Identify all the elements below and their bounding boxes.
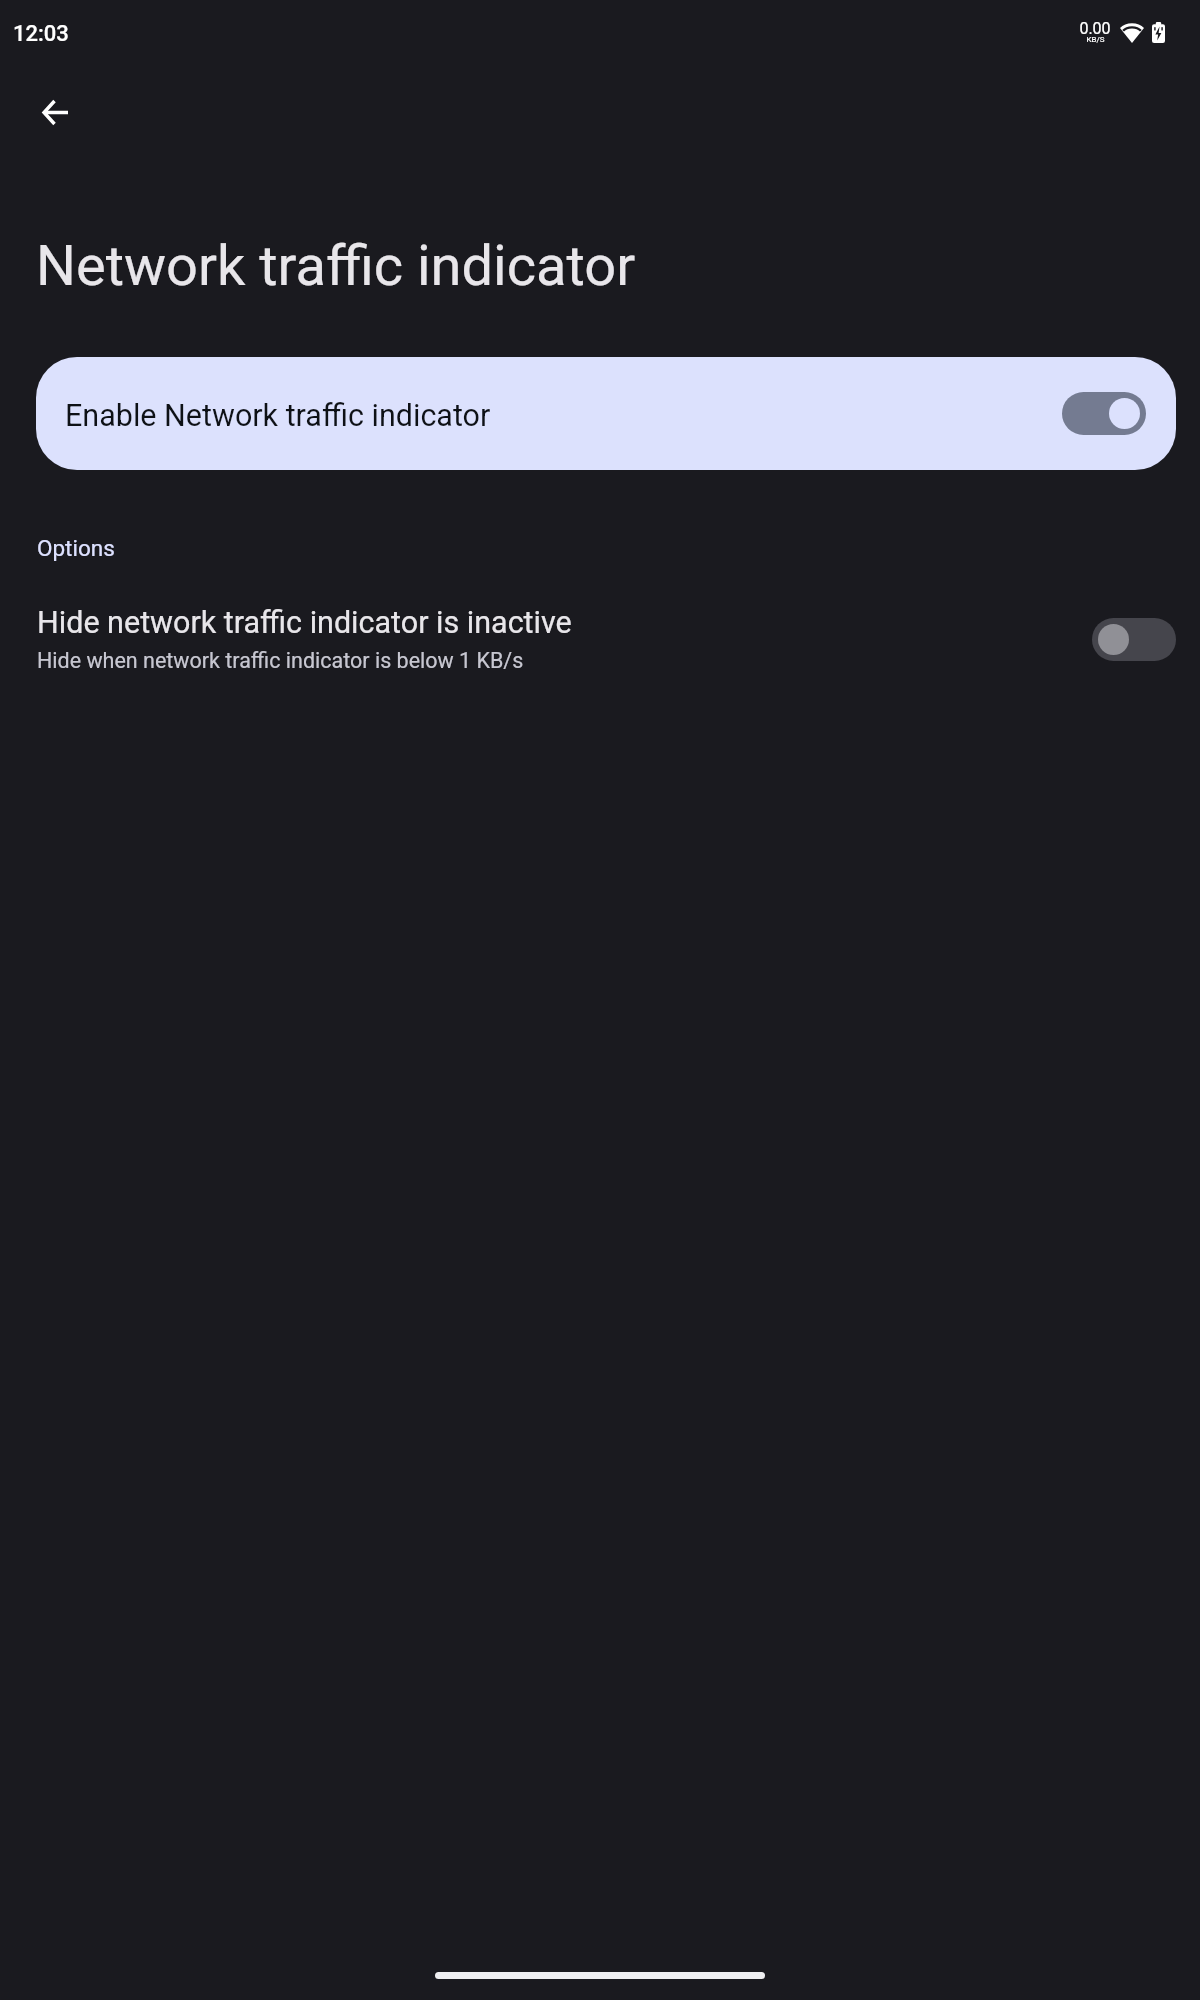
staticText: 12:03 — [13, 21, 69, 47]
button[interactable]: Back — [15, 72, 95, 152]
staticText: KB/S — [1086, 35, 1105, 44]
staticText: Hide network traffic indicator is inacti… — [37, 605, 572, 641]
staticText: Enable Network traffic indicator — [65, 398, 491, 434]
staticText: Hide when network traffic indicator is b… — [37, 648, 524, 673]
button[interactable]: Hide network traffic indicator when inac… — [1092, 618, 1176, 661]
staticText: Network traffic indicator — [36, 233, 636, 299]
button[interactable]: Hide network traffic indicator is inacti… — [0, 589, 1200, 689]
staticText: Options — [37, 535, 115, 561]
button[interactable]: Enable Network traffic indicator — [36, 357, 1176, 470]
button[interactable]: Enable Network traffic indicator — [1062, 392, 1146, 435]
staticText: 0.00 — [1079, 19, 1111, 38]
